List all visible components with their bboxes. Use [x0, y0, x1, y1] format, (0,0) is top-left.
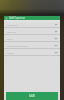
- button[interactable]: Date: [4, 35, 60, 42]
- staticText: Note: [7, 51, 13, 54]
- button[interactable]: Note: [4, 49, 60, 56]
- staticText: Category: [7, 23, 18, 26]
- button[interactable]: Payment method: [4, 42, 60, 49]
- staticText: Add Expense: [9, 16, 25, 20]
- button[interactable]: Category: [4, 21, 60, 28]
- staticText: Payment method: [7, 44, 28, 47]
- button[interactable]: Amount: [4, 28, 60, 35]
- button[interactable]: Back: [5, 17, 8, 20]
- staticText: Amount: [7, 30, 17, 33]
- button[interactable]: SAVE: [6, 92, 58, 100]
- staticText: SAVE: [29, 94, 36, 98]
- staticText: Date: [7, 37, 13, 40]
